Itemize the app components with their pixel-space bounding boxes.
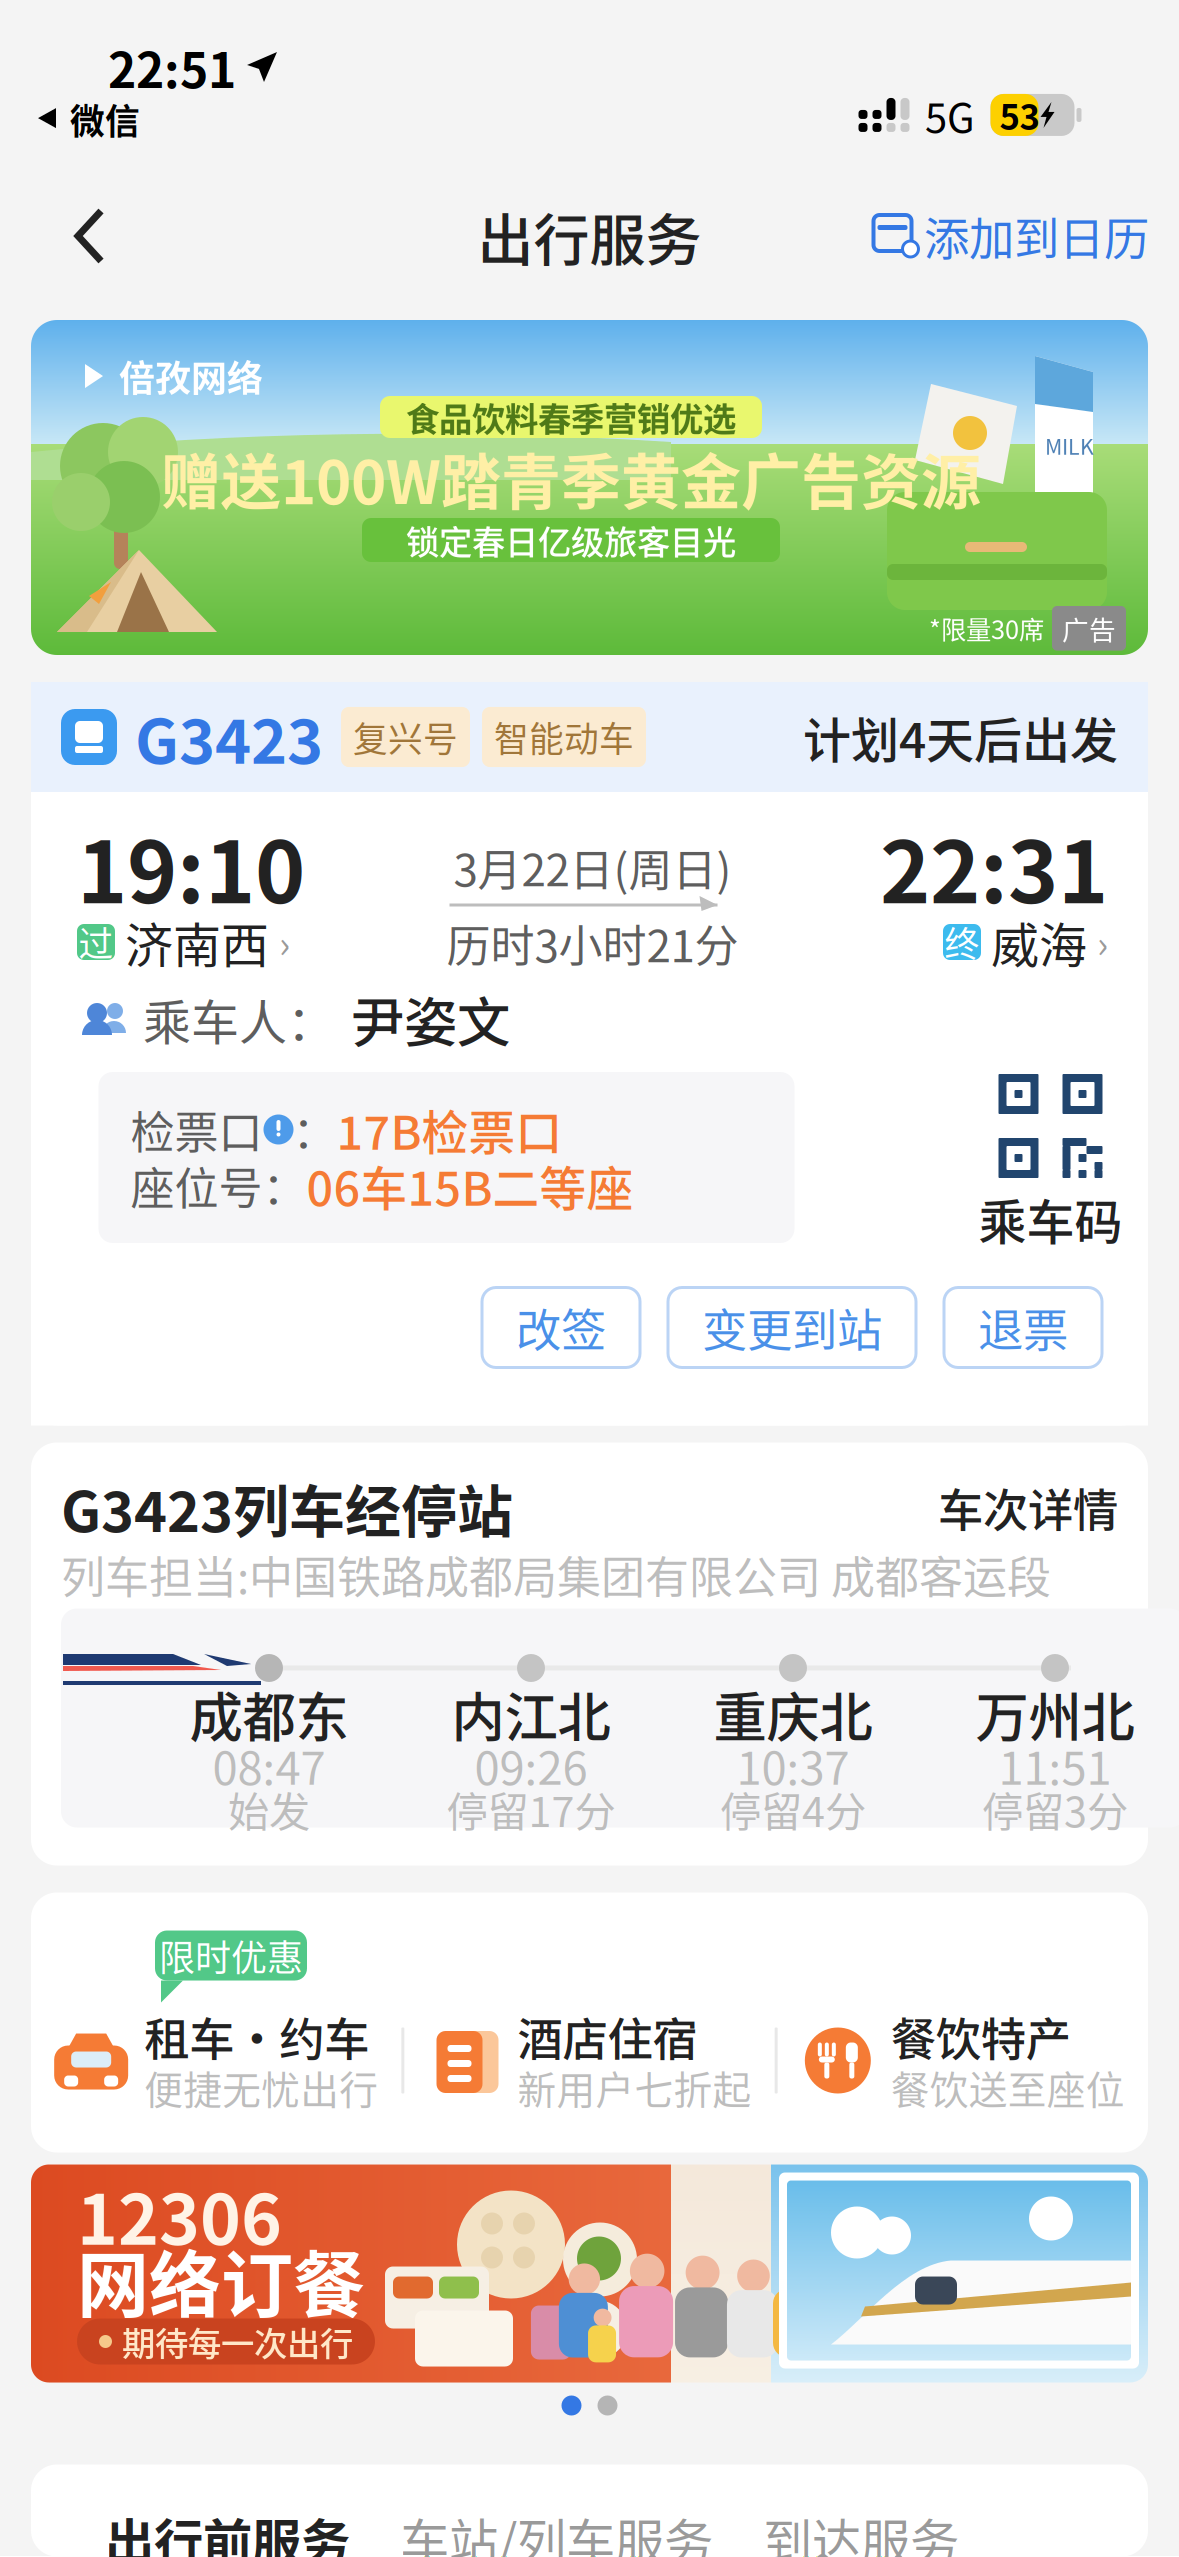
staticText: 内江北 (451, 1675, 610, 1753)
button[interactable]: 12306 (31, 2164, 1148, 2382)
staticText: 变更到站 (702, 1295, 882, 1360)
staticText: 退票 (978, 1295, 1068, 1360)
staticText: 酒店住宿 (517, 2004, 697, 2069)
button[interactable]: 改签 (482, 1287, 640, 1367)
staticText: 锁定春日亿级旅客目光 (406, 516, 736, 564)
staticText: 检票口 (130, 1098, 262, 1161)
button[interactable]: 车次详情 (938, 1475, 1118, 1540)
staticText: 停留17分 (446, 1779, 615, 1839)
button[interactable]: 酒店住宿 (404, 2009, 775, 2111)
staticText: 食品饮料春季营销优选 (406, 393, 736, 441)
staticText: 计划4天后出发 (803, 702, 1118, 772)
staticText: 10:37 (736, 1732, 849, 1798)
staticText: 微信 (70, 94, 140, 144)
button[interactable]: 出行前服务 (105, 2503, 350, 2557)
staticText: *限量30席 (929, 610, 1044, 647)
staticText: 22:51 (108, 32, 236, 102)
staticText: ： (292, 1098, 336, 1161)
staticText: 车站/列车服务 (400, 2503, 713, 2557)
staticText: 06车15B二等座 (306, 1152, 633, 1219)
button[interactable]: MILK (31, 320, 1148, 655)
staticText: 12306 (77, 2164, 282, 2265)
button[interactable]: 变更到站 (668, 1287, 916, 1367)
staticText: 终 (944, 917, 979, 967)
staticText: 餐饮特产 (891, 2004, 1071, 2069)
staticText: 09:26 (474, 1732, 587, 1798)
staticText: 08:47 (212, 1732, 325, 1798)
button[interactable]: 乘车码 (978, 1074, 1122, 1253)
staticText: 添加到日历 (924, 203, 1149, 269)
staticText: 始发 (228, 1779, 310, 1839)
staticText: 智能动车 (494, 712, 634, 762)
staticText: 到达服务 (763, 2503, 959, 2557)
staticText: 车次详情 (938, 1475, 1118, 1540)
staticText: 停留4分 (720, 1779, 866, 1839)
staticText: 5G (925, 86, 975, 144)
staticText: 便捷无忧出行 (144, 2059, 378, 2115)
staticText: 万州北 (975, 1675, 1134, 1753)
staticText: 乘车人： (143, 984, 335, 1054)
staticText: 网络订餐 (77, 2227, 365, 2332)
staticText: 座位号： (130, 1154, 306, 1217)
staticText: 17B检票口 (336, 1096, 562, 1163)
staticText: 餐饮送至座位 (891, 2059, 1125, 2115)
staticText: 赠送100W踏青季黄金广告资源 (161, 435, 981, 521)
staticText: 新用户七折起 (517, 2059, 751, 2115)
staticText: 改签 (516, 1295, 606, 1360)
staticText: 期待每一次出行 (122, 2317, 353, 2366)
button[interactable]: 到达服务 (763, 2503, 959, 2557)
staticText: 限时优惠 (159, 1929, 303, 1981)
staticText: 威海 (991, 907, 1087, 977)
staticText: 倍孜网络 (119, 350, 263, 402)
staticText: 停留3分 (982, 1779, 1128, 1839)
staticText: G3423 (135, 693, 323, 781)
staticText: 22:31 (880, 804, 1108, 928)
staticText: 济南西 (125, 907, 269, 977)
staticText: › (279, 915, 290, 969)
button[interactable]: 租车·约车 (31, 2009, 401, 2111)
staticText: 19:10 (77, 804, 305, 928)
staticText: 历时3小时21分 (446, 911, 738, 975)
button[interactable]: 车站/列车服务 (400, 2503, 713, 2557)
staticText: 复兴号 (353, 712, 458, 762)
staticText: G3423列车经停站 (61, 1467, 513, 1548)
button[interactable]: 餐饮特产 (778, 2009, 1148, 2111)
staticText: 出行前服务 (105, 2503, 350, 2557)
staticText: 11:51 (998, 1732, 1111, 1798)
button[interactable]: Back (36, 181, 146, 291)
staticText: MILK (1045, 430, 1094, 461)
staticText: 重庆北 (713, 1675, 872, 1753)
staticText: 列车担当:中国铁路成都局集团有限公司 成都客运段 (61, 1543, 1051, 1606)
staticText: 广告 (1062, 609, 1116, 648)
staticText: › (1097, 915, 1108, 969)
staticText: 尹姿文 (351, 980, 510, 1058)
staticText: 过 (78, 917, 113, 967)
staticText: 3月22日(周日) (453, 835, 731, 899)
staticText: 成都东 (189, 1675, 348, 1753)
staticText: 乘车码 (978, 1184, 1122, 1253)
staticText: 53 (999, 90, 1039, 140)
button[interactable]: 添加到日历 (874, 181, 1179, 291)
staticText: 租车·约车 (144, 2004, 369, 2069)
button[interactable]: 退票 (944, 1287, 1102, 1367)
staticText: 出行服务 (477, 195, 701, 277)
